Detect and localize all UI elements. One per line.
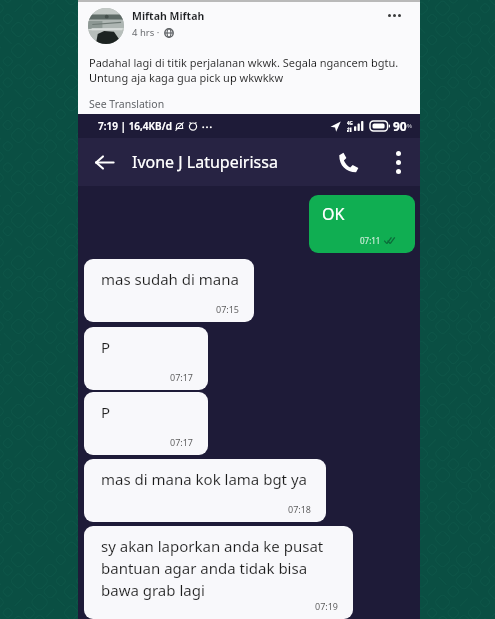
staticText: % xyxy=(407,122,412,130)
staticText: 07:18 xyxy=(288,503,312,515)
staticText: sy akan laporkan anda ke pusat bantuan a… xyxy=(101,536,324,601)
button[interactable]: P xyxy=(84,327,208,390)
button[interactable]: More options xyxy=(385,149,411,175)
button[interactable]: mas sudah di mana xyxy=(84,259,254,322)
button[interactable]: P xyxy=(84,392,208,455)
button[interactable]: mas di mana kok lama bgt ya xyxy=(84,459,326,522)
button[interactable]: More options xyxy=(388,14,401,17)
staticText: Ivone J Latupeirissa xyxy=(132,151,278,173)
staticText: P xyxy=(101,402,111,422)
button[interactable]: Back xyxy=(91,149,117,175)
staticText: 07:19 xyxy=(315,600,339,612)
staticText: mas sudah di mana xyxy=(101,269,239,289)
staticText: 07:11 xyxy=(360,235,381,246)
button[interactable]: See Translation xyxy=(78,96,420,114)
staticText: 07:17 xyxy=(170,436,194,448)
staticText: 90 xyxy=(393,118,407,134)
staticText: OK xyxy=(322,203,345,225)
staticText: Untung aja kaga gua pick up wkwkkw xyxy=(89,70,284,85)
staticText: See Translation xyxy=(89,97,165,111)
staticText: 07:15 xyxy=(216,303,240,315)
staticText: mas di mana kok lama bgt ya xyxy=(101,469,307,489)
button[interactable]: Call xyxy=(335,149,361,175)
button[interactable]: OK xyxy=(309,195,415,253)
button[interactable]: sy akan laporkan anda ke pusat bantuan a… xyxy=(84,526,353,619)
staticText: Padahal lagi di titik perjalanan wkwk. S… xyxy=(89,55,399,70)
staticText: 7:19 | 16,4KB/d xyxy=(98,119,172,133)
staticText: P xyxy=(101,337,111,357)
staticText: 4 hrs · xyxy=(132,26,160,39)
staticText: 4G+ xyxy=(347,120,353,131)
staticText: 07:17 xyxy=(170,371,194,383)
staticText: Miftah Miftah xyxy=(132,9,205,23)
